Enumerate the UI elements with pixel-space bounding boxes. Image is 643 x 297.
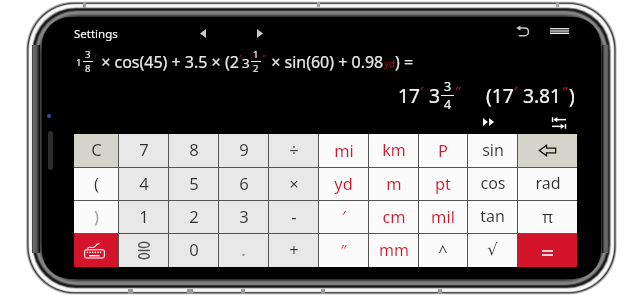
staticText: )	[94, 205, 99, 227]
button[interactable]: cos	[468, 168, 517, 200]
staticText: 8	[189, 138, 199, 161]
button[interactable]: 9	[219, 134, 268, 167]
button[interactable]: Settings	[74, 26, 118, 42]
staticText: 4	[139, 172, 149, 195]
staticText: -	[291, 205, 297, 228]
button[interactable]: 1	[119, 201, 168, 233]
staticText: 9	[239, 138, 249, 161]
staticText: (17	[486, 82, 514, 108]
button[interactable]: 7	[119, 134, 168, 167]
button[interactable]: mm	[369, 234, 418, 267]
button[interactable]	[74, 234, 118, 267]
button[interactable]: (	[74, 168, 118, 200]
staticText: ″	[562, 84, 569, 100]
button[interactable]: mil	[419, 201, 467, 233]
staticText: +	[289, 238, 299, 261]
staticText: 3	[444, 78, 452, 95]
button[interactable]: cm	[369, 201, 418, 233]
button[interactable]: √	[468, 234, 517, 267]
staticText: 3.81	[518, 82, 562, 108]
button[interactable]	[119, 234, 168, 267]
button[interactable]: sin	[468, 134, 517, 167]
button[interactable]: yd	[319, 168, 368, 200]
button[interactable]	[518, 234, 577, 267]
button[interactable]: ″	[319, 234, 368, 267]
button[interactable]: 5	[169, 168, 218, 200]
staticText: 1	[139, 205, 149, 228]
button[interactable]: Swap units	[552, 116, 566, 129]
button[interactable]: 2	[169, 201, 218, 233]
button[interactable]: Menu	[546, 18, 572, 44]
button[interactable]: 8	[169, 134, 218, 167]
button[interactable]: tan	[468, 201, 517, 233]
staticText: 5	[189, 172, 199, 195]
button[interactable]: +	[269, 234, 318, 267]
staticText: cm	[382, 205, 406, 227]
button[interactable]: Previous	[192, 22, 214, 44]
staticText: Settings	[74, 26, 118, 42]
staticText: ) =	[395, 51, 414, 73]
staticText: mi	[334, 139, 354, 161]
staticText: sin	[482, 139, 504, 161]
button[interactable]: ÷	[269, 134, 318, 167]
staticText: 17	[398, 82, 420, 108]
button[interactable]: Next	[249, 22, 271, 44]
button[interactable]: 3	[219, 201, 268, 233]
staticText: C	[91, 138, 102, 161]
staticText: √	[487, 240, 498, 259]
staticText: ′	[94, 52, 97, 64]
staticText: km	[382, 139, 406, 161]
staticText: ″	[455, 84, 462, 100]
staticText: 1	[253, 48, 259, 61]
button[interactable]: C	[74, 134, 118, 167]
button[interactable]: π	[518, 201, 577, 233]
staticText: (	[94, 172, 99, 194]
staticText: ^	[438, 239, 448, 261]
staticText: ′	[239, 52, 242, 63]
button[interactable]: 4	[119, 168, 168, 200]
staticText: P	[438, 139, 448, 161]
staticText: π	[542, 205, 553, 227]
staticText: 4	[444, 96, 452, 113]
staticText: pt	[435, 172, 451, 194]
staticText: 3	[85, 48, 91, 61]
staticText: × sin(60) + 0.98	[267, 51, 384, 73]
button[interactable]: P	[419, 134, 467, 167]
button[interactable]: ^	[419, 234, 467, 267]
staticText: m	[386, 172, 402, 194]
button[interactable]: mi	[319, 134, 368, 167]
button[interactable]: .	[219, 234, 268, 267]
staticText: ″	[262, 52, 267, 64]
staticText: cos	[480, 172, 506, 194]
staticText: 2	[189, 205, 199, 228]
staticText: 3	[239, 205, 249, 228]
button[interactable]: -	[269, 201, 318, 233]
staticText: 1	[76, 56, 82, 69]
staticText: mm	[379, 239, 409, 261]
staticText: 8	[85, 62, 91, 75]
staticText: 3	[242, 54, 250, 72]
staticText: 7	[139, 138, 149, 161]
button[interactable]: m	[369, 168, 418, 200]
button[interactable]: 0	[169, 234, 218, 267]
button[interactable]: km	[369, 134, 418, 167]
button[interactable]: ′	[319, 201, 368, 233]
staticText: tan	[480, 205, 505, 227]
staticText: ′	[514, 84, 518, 100]
staticText: 0	[189, 238, 199, 261]
button[interactable]: pt	[419, 168, 467, 200]
button[interactable]: 6	[219, 168, 268, 200]
staticText: ÷	[289, 138, 299, 161]
staticText: mil	[431, 205, 455, 227]
button[interactable]: ×	[269, 168, 318, 200]
staticText: ×	[289, 172, 299, 195]
button[interactable]: Undo	[511, 20, 534, 43]
staticText: ′	[342, 205, 346, 225]
button[interactable]: Fast forward	[478, 112, 498, 132]
button[interactable]	[518, 134, 577, 167]
staticText: ′	[420, 84, 424, 100]
button[interactable]: )	[74, 201, 118, 233]
staticText: )	[569, 82, 575, 108]
button[interactable]: rad	[518, 168, 577, 200]
staticText: rad	[535, 172, 561, 194]
